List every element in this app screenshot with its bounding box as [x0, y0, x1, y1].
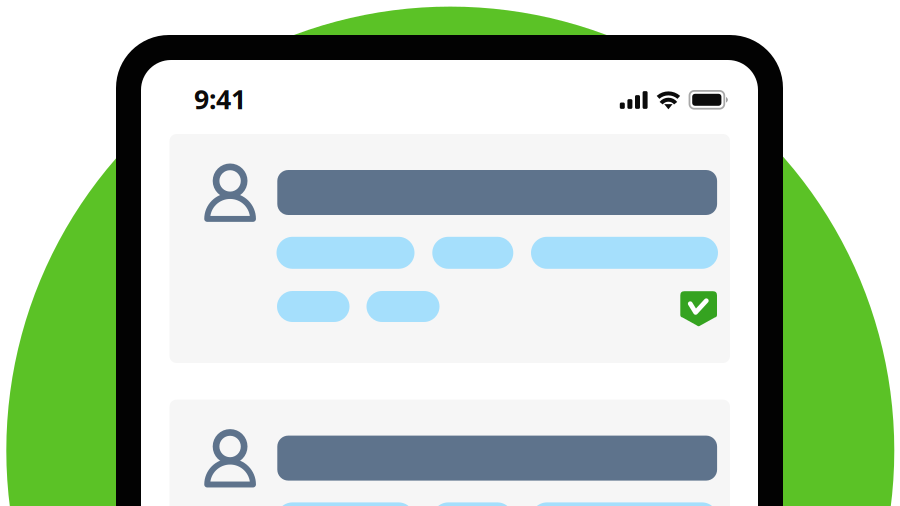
button[interactable]: Contact [169, 400, 730, 506]
staticText: 9:41 [194, 81, 246, 117]
button[interactable]: Contact [169, 134, 730, 363]
